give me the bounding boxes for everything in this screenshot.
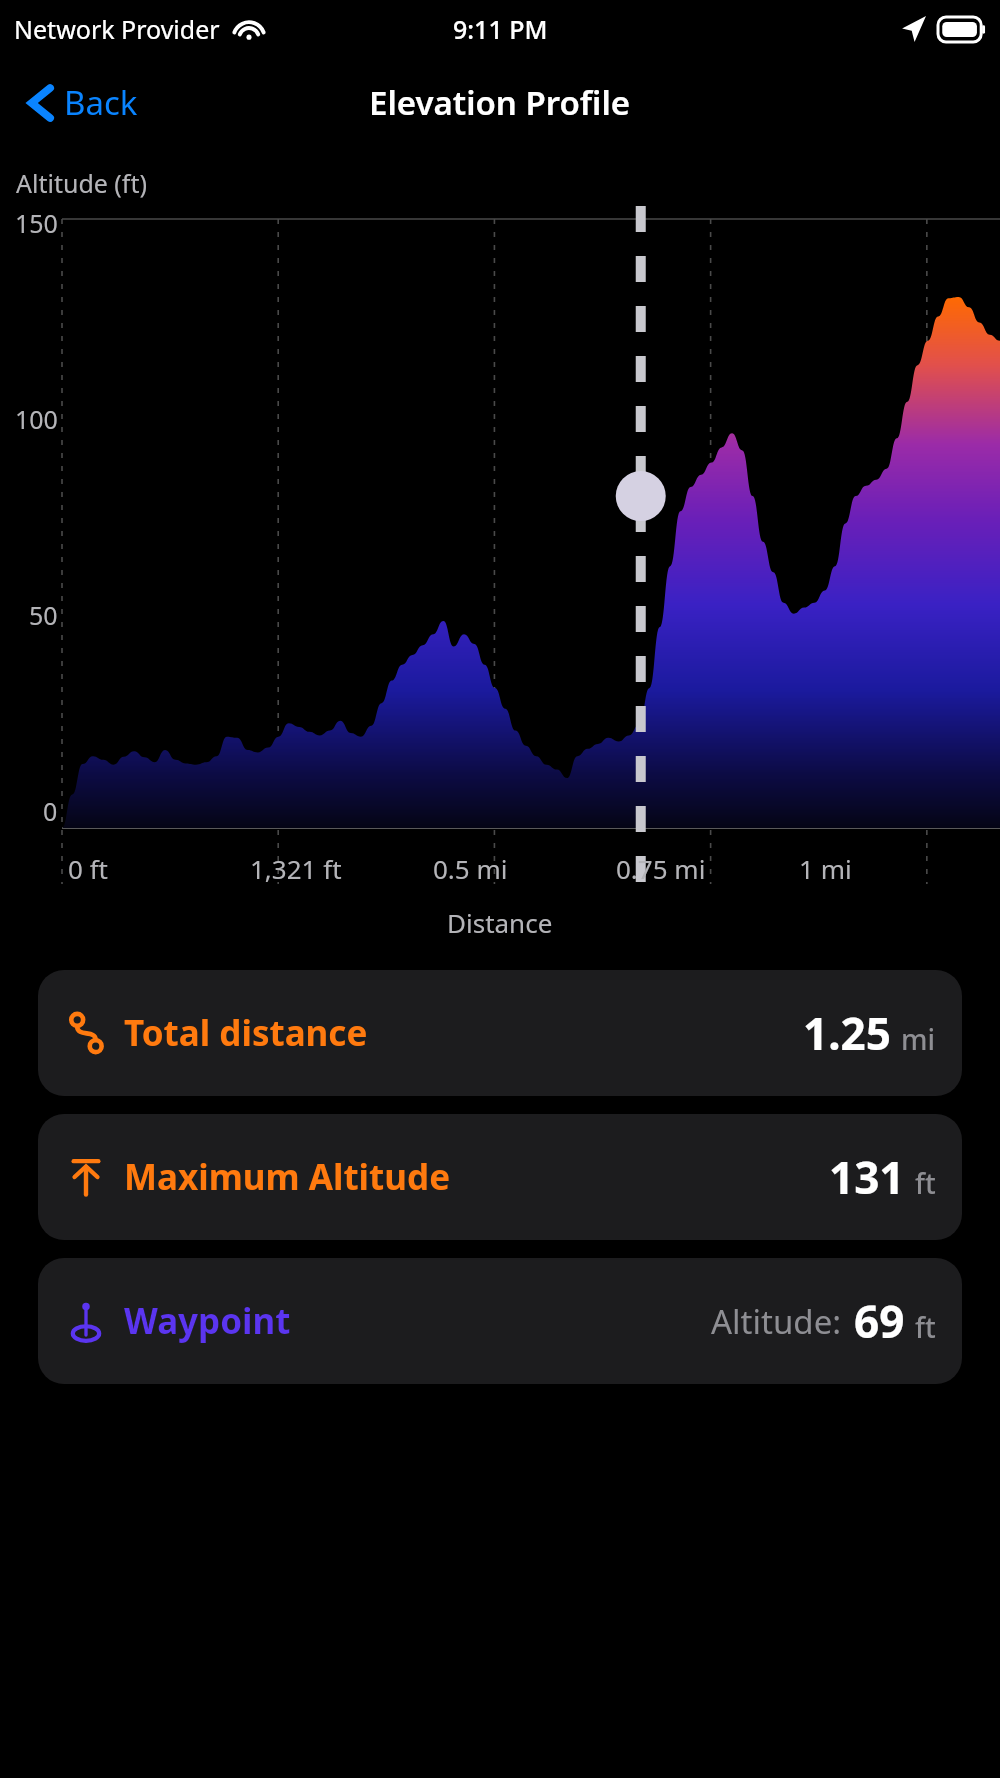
staticText: ft <box>915 1164 936 1202</box>
staticText: 1.25 <box>803 1003 891 1063</box>
staticText: 0 ft <box>68 851 108 886</box>
staticText: 69 <box>854 1291 905 1351</box>
staticText: 0 <box>43 794 58 828</box>
staticText: 9:11 PM <box>453 12 548 46</box>
staticText: 1 mi <box>799 851 852 886</box>
staticText: Distance <box>447 905 553 940</box>
staticText: Network Provider <box>14 12 220 46</box>
button[interactable]: Maximum Altitude <box>38 1114 962 1240</box>
staticText: Altitude (ft) <box>16 166 147 200</box>
staticText: 100 <box>15 402 58 436</box>
staticText: Maximum Altitude <box>124 1153 451 1201</box>
staticText: 0.5 mi <box>433 851 508 886</box>
staticText: 150 <box>15 206 58 240</box>
staticText: mi <box>901 1020 936 1058</box>
button[interactable]: Total distance <box>38 970 962 1096</box>
staticText: 50 <box>29 598 58 632</box>
staticText: ft <box>915 1308 936 1346</box>
button[interactable]: Back <box>22 74 144 131</box>
button[interactable]: Waypoint <box>38 1258 962 1384</box>
staticText: 0.75 mi <box>616 851 706 886</box>
staticText: Total distance <box>124 1009 368 1057</box>
staticText: 1,321 ft <box>250 851 342 886</box>
staticText: Back <box>64 80 138 125</box>
staticText: Elevation Profile <box>369 80 631 125</box>
staticText: Altitude: <box>711 1299 842 1344</box>
staticText: Waypoint <box>124 1297 291 1345</box>
staticText: 131 <box>829 1147 905 1207</box>
